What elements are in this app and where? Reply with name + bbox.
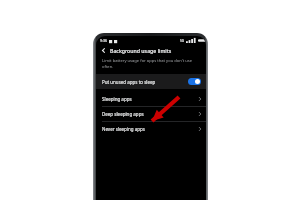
button[interactable]: Put unused apps to sleep [96,74,206,89]
staticText: Put unused apps to sleep [102,79,156,85]
staticText: 9:36 [100,38,108,43]
staticText: 5G [180,39,185,43]
button[interactable]: Never sleeping apps [96,122,206,136]
staticText: Limit battery usage for apps that you do… [102,58,198,70]
staticText: Deep sleeping apps [102,111,144,117]
staticText: Sleeping apps [102,96,132,102]
button[interactable]: Sleeping apps [96,92,206,106]
staticText: Background usage limits [110,47,172,54]
button[interactable]: Navigate up [99,46,108,55]
staticText: Never sleeping apps [102,126,145,132]
button[interactable]: Deep sleeping apps [96,107,206,121]
